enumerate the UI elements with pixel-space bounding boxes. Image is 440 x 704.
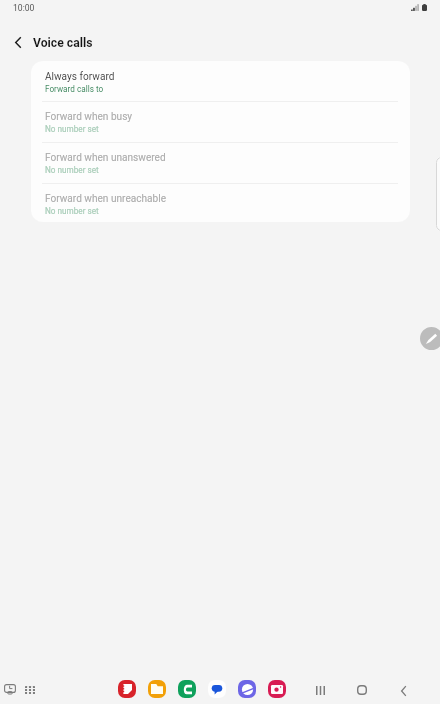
button[interactable]: Always forward [31,61,410,101]
button[interactable]: Forward when unanswered [31,142,410,183]
button[interactable]: Forward when unreachable [31,183,410,222]
button[interactable]: Back [392,680,414,702]
staticText: 10:00 [13,3,35,13]
button[interactable]: Edit edge panel [420,327,440,350]
staticText: Forward when unanswered [45,152,166,164]
button[interactable]: My Files [148,680,166,698]
staticText: Always forward [45,71,115,83]
button[interactable]: Navigate up [6,30,30,54]
staticText: No number set [45,206,99,216]
button[interactable]: Internet [238,680,256,698]
staticText: Voice calls [33,36,93,50]
button[interactable]: Samsung Notes [118,680,136,698]
button[interactable]: All apps [23,683,37,697]
button[interactable]: Contacts [178,680,196,698]
button[interactable]: Messages [208,680,226,698]
button[interactable]: Recent apps [309,679,331,701]
staticText: No number set [45,124,99,134]
staticText: Forward when busy [45,111,133,123]
button[interactable]: Forward when busy [31,101,410,142]
staticText: No number set [45,165,99,175]
staticText: Forward calls to [45,84,104,94]
button[interactable]: Camera [268,680,286,698]
staticText: Forward when unreachable [45,193,167,205]
button[interactable]: Clipboard history [2,681,18,697]
button[interactable]: Home [351,679,373,701]
